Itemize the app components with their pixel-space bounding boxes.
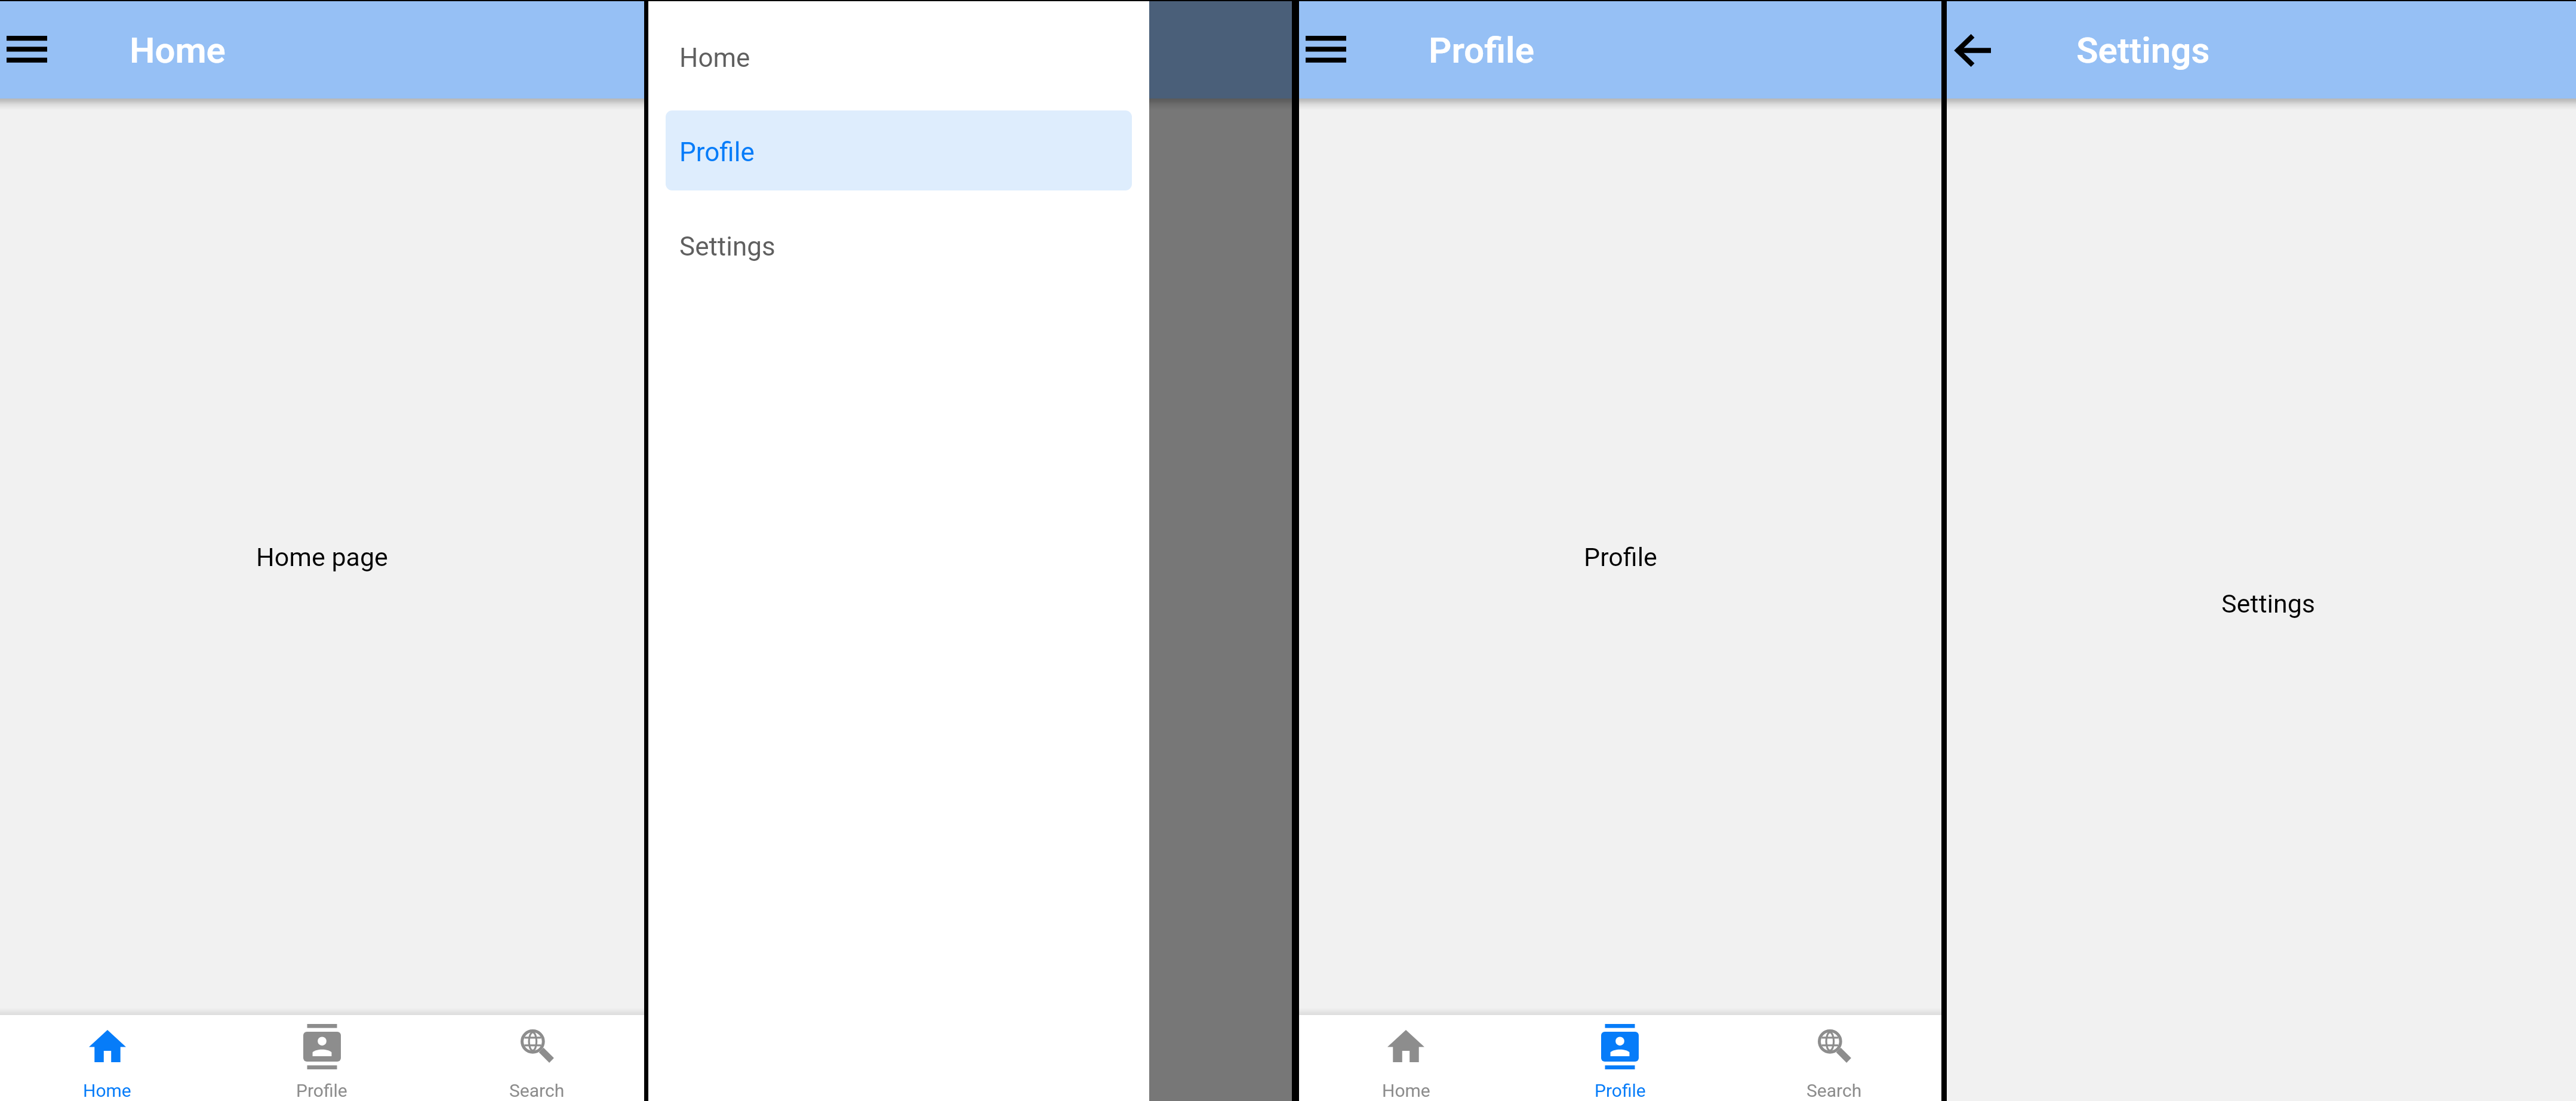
button[interactable]: Open navigation menu — [1285, 6, 1366, 92]
staticText: Profile — [1595, 1080, 1646, 1101]
button[interactable]: Back — [1932, 7, 2013, 93]
button[interactable]: Search — [429, 1015, 644, 1101]
button[interactable]: Close navigation menu — [648, 0, 1292, 1101]
staticText: Settings — [2221, 589, 2316, 619]
staticText: Profile — [1584, 542, 1657, 572]
button[interactable]: Home — [0, 1015, 214, 1101]
staticText: Search — [509, 1080, 565, 1101]
button[interactable]: Home — [1299, 1015, 1513, 1101]
staticText: Home page — [256, 542, 388, 572]
button[interactable]: Profile — [1513, 1015, 1727, 1101]
staticText: Home — [1382, 1080, 1430, 1101]
staticText: Home — [83, 1080, 131, 1101]
button[interactable]: Open navigation menu — [0, 6, 67, 92]
staticText: Profile — [296, 1080, 347, 1101]
button[interactable]: Settings — [666, 205, 1132, 285]
staticText: Home — [679, 42, 750, 73]
button[interactable]: Profile — [666, 110, 1132, 190]
staticText: Profile — [679, 137, 755, 168]
staticText: Home — [130, 29, 226, 71]
staticText: Search — [1806, 1080, 1862, 1101]
button[interactable]: Home — [666, 16, 1132, 96]
staticText: Profile — [1429, 29, 1534, 71]
staticText: Settings — [2076, 29, 2210, 71]
button[interactable]: Search — [1727, 1015, 1941, 1101]
button[interactable]: Profile — [214, 1015, 429, 1101]
staticText: Settings — [679, 231, 775, 262]
